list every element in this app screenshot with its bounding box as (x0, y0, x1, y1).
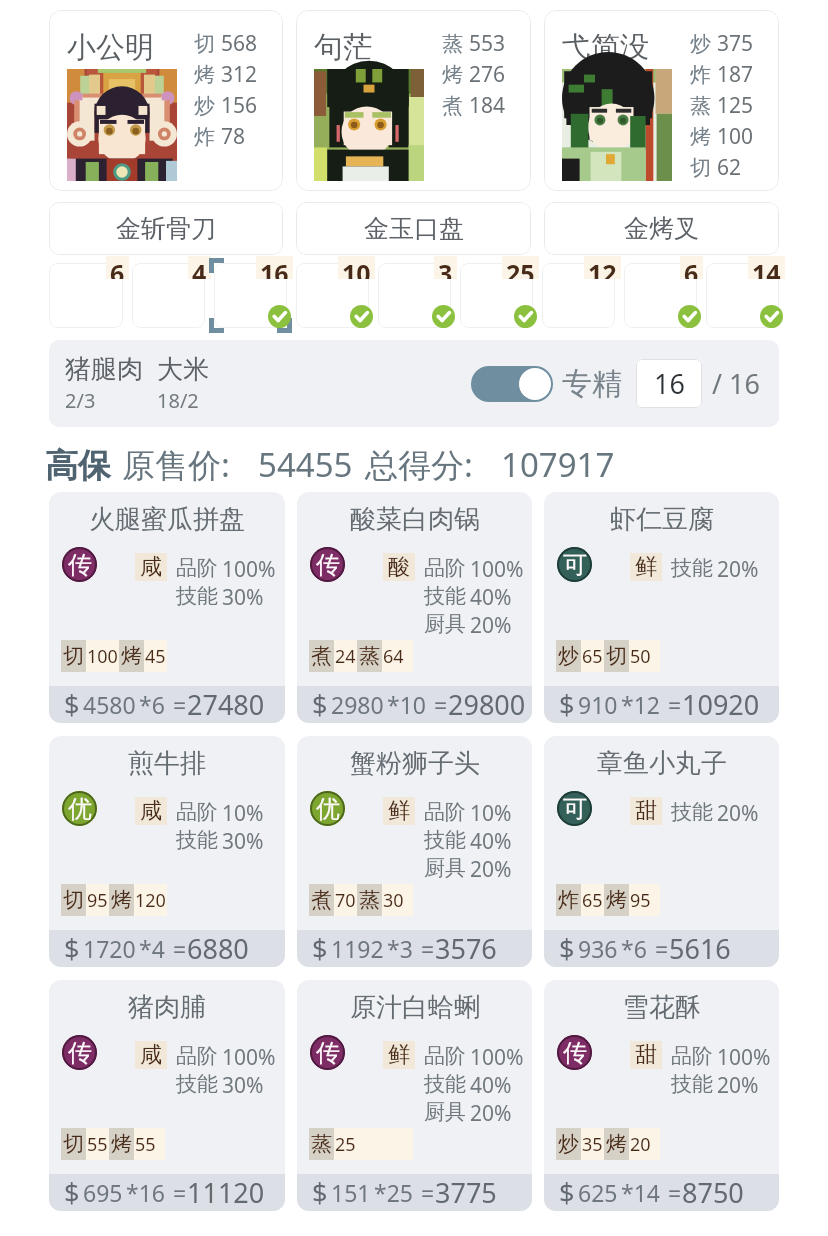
staticText: 技能 (671, 555, 713, 581)
staticText: 54455 (258, 442, 353, 487)
staticText: 传 (316, 550, 340, 580)
button[interactable]: 句茫 (296, 10, 531, 191)
staticText: 20 (630, 1132, 651, 1157)
staticText: 276 (469, 60, 506, 89)
staticText: 原汁白蛤蜊 (350, 991, 480, 1024)
staticText: 30% (222, 827, 264, 855)
staticText: *12 (621, 689, 660, 720)
staticText: 11120 (187, 1174, 265, 1211)
staticText: 95 (630, 888, 651, 913)
staticText: 原售价: (122, 442, 230, 487)
button[interactable]: 原汁白蛤蜊 (297, 980, 532, 1211)
staticText: 虾仁豆腐 (610, 503, 714, 536)
staticText: 10% (470, 799, 512, 827)
staticText: 咸 (140, 553, 162, 581)
staticText: 64 (383, 644, 404, 669)
staticText: 品阶 (176, 799, 218, 825)
staticText: 厨具 (424, 855, 466, 881)
staticText: *16 (126, 1177, 165, 1208)
staticText: 568 (221, 29, 258, 58)
staticText: *6 (139, 689, 165, 720)
button[interactable]: 酸菜白肉锅 (297, 492, 532, 723)
staticText: 烤 (194, 62, 215, 88)
staticText: 切 (690, 155, 711, 181)
staticText: $ (312, 1174, 328, 1211)
button[interactable]: 25 (460, 263, 533, 328)
staticText: $ (64, 686, 80, 723)
button[interactable]: 16 (636, 359, 702, 408)
staticText: 传 (68, 1038, 92, 1068)
staticText: 蒸 (690, 93, 711, 119)
staticText: = (668, 689, 682, 720)
button[interactable]: 雪花酥 (544, 980, 779, 1211)
button[interactable]: 弋简没 (544, 10, 779, 191)
button[interactable]: 16 (214, 263, 287, 328)
staticText: 16 (260, 256, 289, 279)
button[interactable]: 金斩骨刀 (49, 202, 283, 255)
staticText: $ (559, 930, 575, 967)
button[interactable]: 猪肉脯 (49, 980, 285, 1211)
button[interactable]: 金玉口盘 (296, 202, 531, 255)
staticText: 酸菜白肉锅 (350, 503, 480, 536)
staticText: 40% (470, 1071, 512, 1099)
button[interactable]: 4 (132, 263, 205, 328)
staticText: 炸 (194, 124, 215, 150)
staticText: = (668, 1177, 682, 1208)
staticText: $ (64, 930, 80, 967)
button[interactable]: 14 (706, 263, 779, 328)
button[interactable]: 6 (624, 263, 697, 328)
staticText: 40% (470, 827, 512, 855)
button[interactable]: 火腿蜜瓜拼盘 (49, 492, 285, 723)
staticText: 65 (582, 888, 603, 913)
staticText: 可 (563, 550, 587, 580)
button[interactable]: 3 (378, 263, 451, 328)
button[interactable]: 章鱼小丸子 (544, 736, 779, 967)
button[interactable]: 12 (542, 263, 615, 328)
staticText: 18/2 (157, 387, 199, 414)
staticText: 可 (563, 794, 587, 824)
staticText: 625 (578, 1177, 618, 1208)
staticText: 184 (469, 91, 506, 120)
button[interactable]: 金烤叉 (544, 202, 779, 255)
staticText: 弋简没 (562, 29, 649, 61)
staticText: 猪腿肉 (65, 353, 143, 386)
staticText: 70 (335, 888, 356, 913)
staticText: 炒 (558, 643, 579, 669)
staticText: *10 (387, 689, 426, 720)
staticText: 品阶 (671, 1043, 713, 1069)
staticText: 烤 (111, 1131, 132, 1157)
staticText: 甜 (635, 1041, 657, 1069)
staticText: 传 (68, 550, 92, 580)
staticText: 62 (717, 153, 742, 182)
staticText: 936 (578, 933, 618, 964)
staticText: $ (64, 1174, 80, 1211)
button[interactable]: 煎牛排 (49, 736, 285, 967)
staticText: 小公明 (67, 29, 154, 61)
button[interactable]: 6 (49, 263, 123, 328)
staticText: $ (312, 930, 328, 967)
staticText: 总得分: (365, 442, 473, 487)
staticText: 20% (470, 611, 512, 639)
button[interactable]: Toggle 专精 (471, 366, 553, 402)
staticText: 55 (135, 1132, 156, 1157)
button[interactable]: 虾仁豆腐 (544, 492, 779, 723)
staticText: = (434, 689, 448, 720)
staticText: 蒸 (311, 1131, 332, 1157)
staticText: 品阶 (176, 1043, 218, 1069)
staticText: 咸 (140, 797, 162, 825)
staticText: 技能 (424, 583, 466, 609)
button[interactable]: 蟹粉狮子头 (297, 736, 532, 967)
staticText: 技能 (671, 799, 713, 825)
staticText: 40% (470, 583, 512, 611)
staticText: 151 (331, 1177, 371, 1208)
staticText: = (173, 1177, 187, 1208)
staticText: 高保 (45, 445, 111, 487)
staticText: 火腿蜜瓜拼盘 (89, 503, 245, 536)
staticText: 技能 (424, 827, 466, 853)
staticText: 65 (582, 644, 603, 669)
button[interactable]: 10 (296, 263, 369, 328)
staticText: 8750 (682, 1174, 744, 1211)
staticText: 技能 (671, 1071, 713, 1097)
button[interactable]: 小公明 (49, 10, 283, 191)
staticText: 句茫 (314, 29, 372, 61)
